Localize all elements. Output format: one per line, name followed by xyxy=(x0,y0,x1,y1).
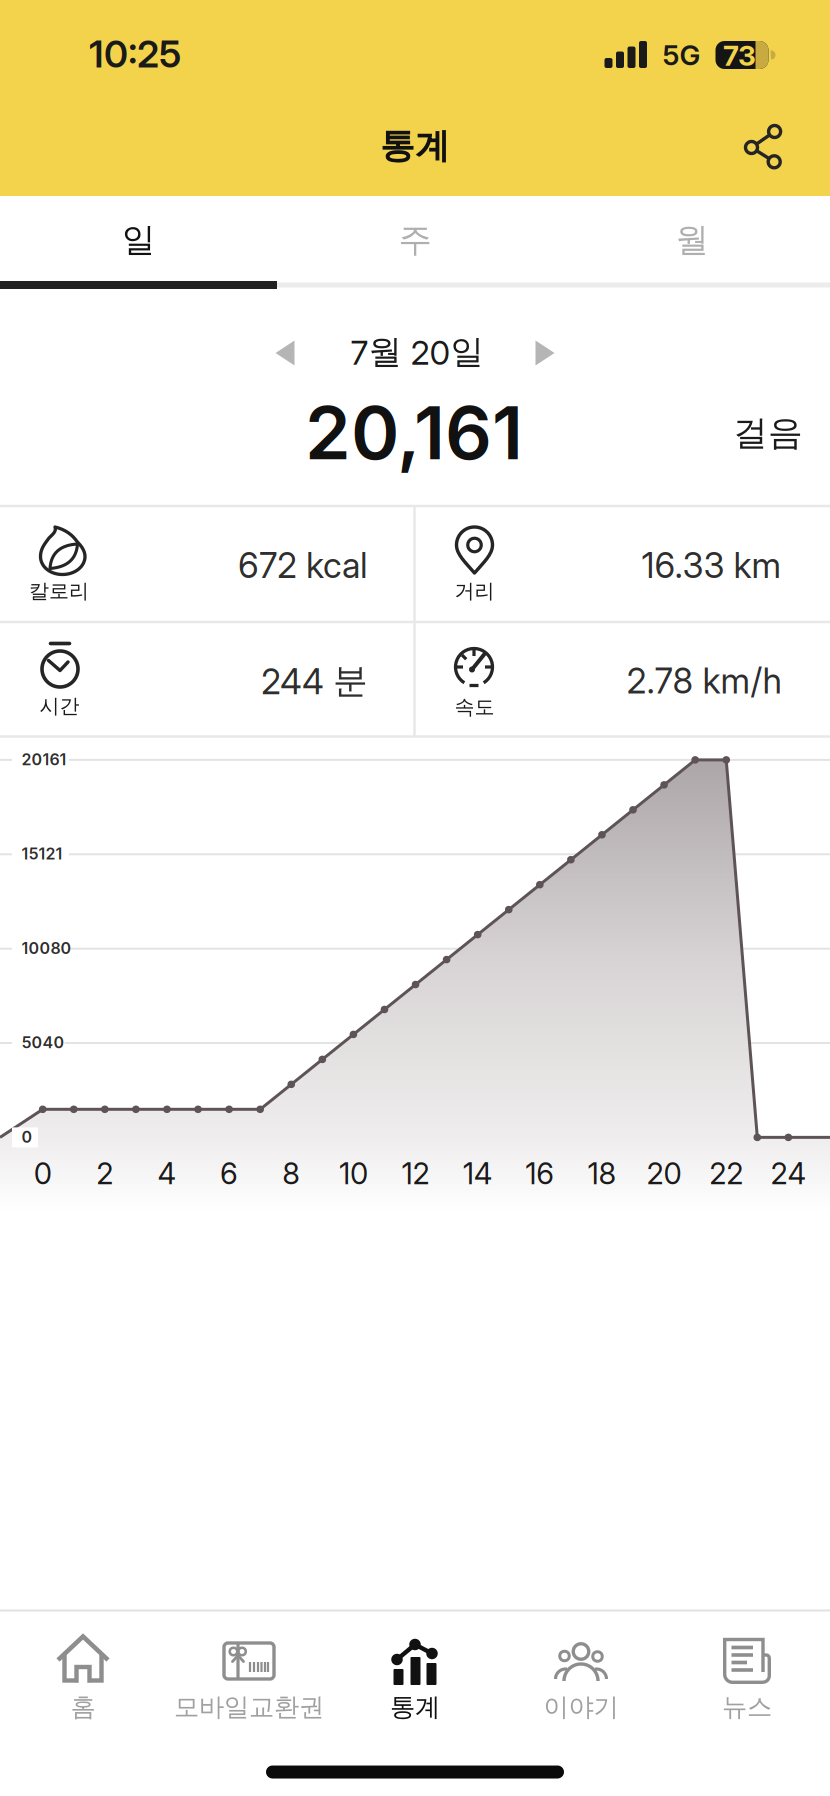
staticText: 20161 xyxy=(21,750,66,769)
button[interactable]: 이전 날짜 xyxy=(275,338,295,367)
button[interactable]: 뉴스 xyxy=(664,1619,830,1739)
staticText: 5G xyxy=(662,38,700,71)
button[interactable]: 통계 xyxy=(332,1619,498,1739)
staticText: 14 xyxy=(463,1156,493,1191)
staticText: 73 xyxy=(723,39,756,72)
staticText: 뉴스 xyxy=(722,1691,772,1722)
staticText: 24 xyxy=(770,1156,806,1191)
staticText: 15121 xyxy=(21,844,62,863)
button[interactable]: 이야기 xyxy=(498,1619,664,1739)
staticText: 속도 xyxy=(454,695,494,719)
staticText: 6 xyxy=(220,1156,238,1191)
staticText: 0 xyxy=(34,1156,52,1191)
staticText: 672 kcal xyxy=(238,545,368,586)
button[interactable]: 월 xyxy=(553,196,830,284)
staticText: 홈 xyxy=(70,1691,95,1722)
button[interactable]: 주 xyxy=(276,196,553,284)
staticText: 20,161 xyxy=(305,389,523,476)
staticText: 일 xyxy=(122,219,155,260)
staticText: 거리 xyxy=(454,579,494,603)
staticText: 칼로리 xyxy=(29,579,89,603)
button[interactable]: 다음 날짜 xyxy=(535,338,555,367)
staticText: 244 분 xyxy=(261,660,368,702)
staticText: 월 xyxy=(675,219,708,260)
staticText: 16 xyxy=(525,1156,554,1191)
staticText: 시간 xyxy=(39,694,79,718)
staticText: 모바일교환권 xyxy=(174,1691,324,1722)
staticText: 18 xyxy=(587,1156,616,1191)
staticText: 10:25 xyxy=(89,32,181,76)
button[interactable]: 공유 xyxy=(741,125,785,169)
staticText: 2 xyxy=(96,1156,113,1191)
staticText: 10080 xyxy=(21,939,71,958)
button[interactable]: 모바일교환권 xyxy=(166,1619,332,1739)
staticText: 20 xyxy=(647,1156,682,1191)
staticText: 걸음 xyxy=(733,412,803,454)
button[interactable]: 홈 xyxy=(0,1619,166,1739)
staticText: 8 xyxy=(282,1156,300,1191)
staticText: 16.33 km xyxy=(641,545,781,586)
staticText: 통계 xyxy=(380,125,450,167)
staticText: 5040 xyxy=(21,1033,64,1052)
staticText: 22 xyxy=(709,1156,743,1191)
staticText: 4 xyxy=(157,1156,176,1191)
staticText: 10 xyxy=(339,1156,368,1191)
staticText: 2.78 km/h xyxy=(626,661,781,701)
staticText: 통계 xyxy=(390,1691,440,1722)
staticText: 이야기 xyxy=(543,1691,618,1722)
staticText: 주 xyxy=(398,219,431,260)
staticText: 7월 20일 xyxy=(350,331,483,372)
staticText: 0 xyxy=(21,1127,32,1146)
button[interactable]: 일 xyxy=(0,196,277,284)
staticText: 12 xyxy=(401,1156,429,1191)
